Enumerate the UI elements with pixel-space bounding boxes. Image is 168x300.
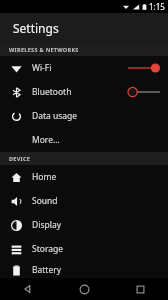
button[interactable]: Display [0,213,168,237]
button[interactable]: Sound [0,189,168,213]
button[interactable]: Toggle on [128,60,160,76]
button[interactable]: Back [0,278,56,300]
staticText: More... [32,134,160,146]
button[interactable]: Bluetooth [0,80,168,104]
button[interactable]: Home [56,278,112,300]
staticText: Display [32,219,160,231]
staticText: Home [32,171,160,183]
staticText: Storage [32,243,160,255]
button[interactable]: Data usage [0,104,168,128]
staticText: Bluetooth [32,86,128,98]
staticText: DEVICE [9,155,31,162]
button[interactable]: Wi-Fi [0,56,168,80]
button[interactable]: Toggle off [128,84,160,100]
staticText: Data usage [32,110,160,122]
staticText: WIRELESS & NETWORKS [9,46,79,53]
button[interactable]: More... [0,128,168,152]
staticText: Sound [32,195,160,207]
staticText: Battery [32,264,160,276]
staticText: Wi-Fi [32,62,128,74]
button[interactable]: Storage [0,237,168,261]
staticText: Settings [13,20,59,36]
button[interactable]: Home [0,165,168,189]
staticText: 1:15 [149,1,165,12]
button[interactable]: Recent apps [112,278,168,300]
button[interactable]: Battery [0,261,168,278]
